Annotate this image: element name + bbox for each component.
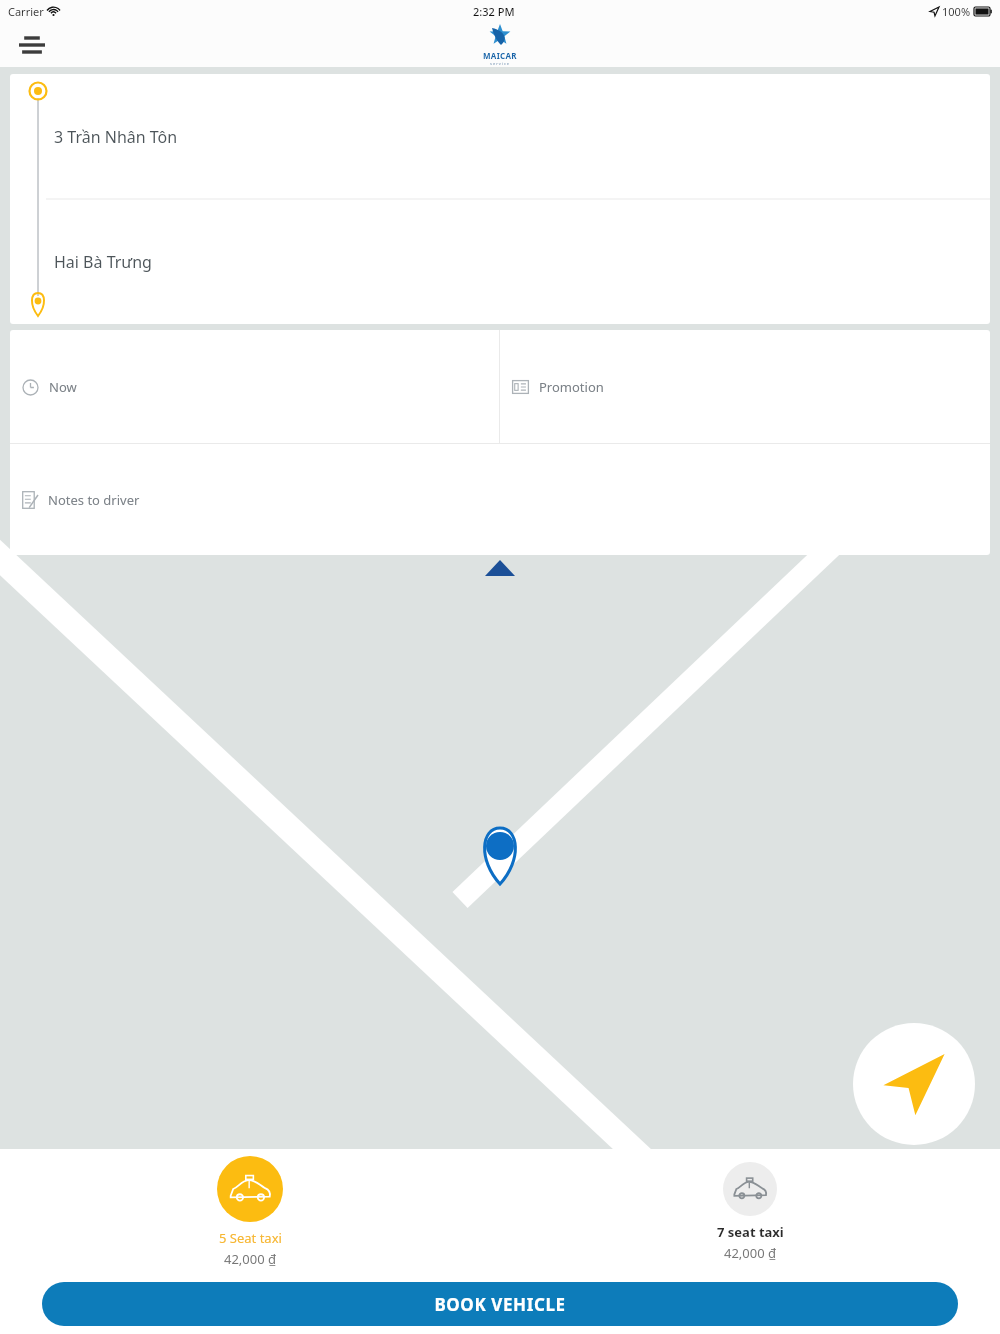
staticText: Notes to driver	[48, 491, 140, 509]
button[interactable]: BOOK VEHICLE	[42, 1282, 958, 1326]
staticText: 100%	[942, 4, 971, 19]
button[interactable]: Now	[10, 330, 499, 443]
staticText: 5 Seat taxi	[219, 1229, 282, 1247]
button[interactable]: My location	[853, 1023, 975, 1145]
staticText: MAICAR	[483, 50, 517, 61]
staticText: Now	[49, 378, 77, 396]
button[interactable]: 5 Seat taxi	[0, 1149, 500, 1274]
button[interactable]: 7 seat taxi	[500, 1149, 1000, 1274]
staticText: Carrier	[8, 4, 44, 19]
staticText: 7 seat taxi	[717, 1223, 784, 1241]
staticText: 2:32 PM	[473, 4, 515, 19]
button[interactable]: Hai Bà Trưng	[54, 199, 990, 324]
staticText: 42,000 ₫	[724, 1244, 777, 1262]
staticText: Promotion	[539, 378, 604, 396]
staticText: 3 Trần Nhân Tôn	[54, 126, 178, 148]
button[interactable]: Notes to driver	[10, 444, 990, 555]
staticText: service	[490, 61, 511, 66]
button[interactable]: 3 Trần Nhân Tôn	[54, 74, 990, 199]
staticText: BOOK VEHICLE	[434, 1293, 566, 1316]
button[interactable]: Menu	[6, 22, 58, 67]
staticText: Hai Bà Trưng	[54, 251, 152, 273]
button[interactable]: Promotion	[500, 330, 990, 443]
staticText: 42,000 ₫	[224, 1250, 277, 1268]
